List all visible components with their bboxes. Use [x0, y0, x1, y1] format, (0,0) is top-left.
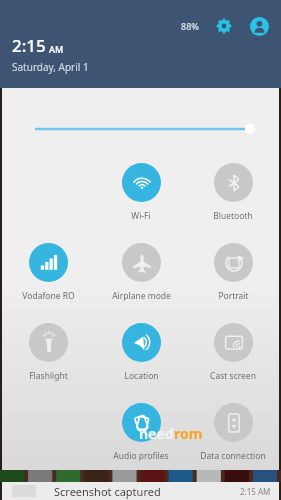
staticText: need — [139, 424, 174, 443]
button[interactable]: Audio profiles — [95, 398, 187, 470]
button[interactable]: Screenshot captured — [2, 482, 279, 500]
staticText: Wi-Fi — [131, 210, 151, 222]
staticText: Airplane mode — [112, 290, 171, 302]
staticText: 88% — [181, 20, 199, 32]
button[interactable]: 2:15 — [12, 34, 89, 74]
button[interactable]: Vodafone RO — [2, 238, 95, 318]
button[interactable]: Airplane mode — [95, 238, 187, 318]
staticText: Saturday, April 1 — [12, 60, 89, 74]
staticText: Audio profiles — [113, 450, 169, 462]
button[interactable]: Flashlight — [2, 318, 95, 398]
staticText: Data connection — [200, 450, 266, 462]
button[interactable]: Bluetooth — [187, 158, 279, 238]
staticText: 2:15 AM — [240, 486, 271, 497]
button[interactable]: Data connection — [187, 398, 279, 470]
button[interactable]: Location — [95, 318, 187, 398]
button[interactable]: User profile — [247, 14, 271, 38]
staticText: Vodafone RO — [22, 290, 75, 302]
staticText: Flashlight — [29, 370, 68, 382]
button[interactable]: Wi-Fi — [95, 158, 187, 238]
button[interactable]: Cast screen — [187, 318, 279, 398]
button[interactable]: Brightness — [2, 118, 279, 140]
staticText: AM — [49, 43, 64, 55]
staticText: Portrait — [218, 290, 249, 302]
staticText: Screenshot captured — [54, 484, 161, 499]
staticText: Cast screen — [210, 370, 256, 382]
button[interactable]: Settings — [213, 15, 235, 37]
button[interactable]: Portrait — [187, 238, 279, 318]
staticText: rom — [174, 424, 203, 443]
staticText: Bluetooth — [213, 210, 253, 222]
staticText: 2:15 — [12, 34, 46, 57]
staticText: Location — [124, 370, 159, 382]
